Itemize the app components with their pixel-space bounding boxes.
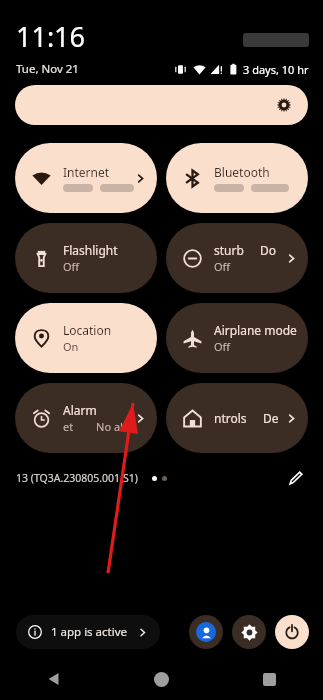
staticText: 11:16 bbox=[16, 18, 86, 55]
button[interactable]: Airplane mode bbox=[166, 303, 308, 373]
button[interactable]: Brightness bbox=[15, 85, 308, 125]
button[interactable]: Edit tiles bbox=[283, 466, 307, 490]
button[interactable]: User account bbox=[189, 615, 223, 649]
staticText: et No ala bbox=[63, 419, 130, 434]
staticText: Tue, Nov 21 bbox=[16, 61, 79, 77]
staticText: ntrols bbox=[214, 410, 247, 426]
staticText: De bbox=[263, 410, 279, 426]
staticText: 3 days, 10 hr bbox=[243, 62, 309, 77]
staticText: Do bbox=[260, 242, 277, 258]
button[interactable]: ntrols bbox=[166, 383, 308, 453]
button[interactable]: Back bbox=[32, 658, 76, 700]
button[interactable]: sturb bbox=[166, 223, 308, 293]
staticText: On bbox=[63, 339, 79, 354]
staticText: Internet bbox=[63, 164, 110, 180]
button[interactable]: Internet bbox=[15, 143, 157, 213]
button[interactable]: Alarm bbox=[15, 383, 157, 453]
staticText: Bluetooth bbox=[214, 164, 270, 180]
button[interactable]: Power bbox=[275, 615, 309, 649]
staticText: 13 (TQ3A.230805.001.S1) bbox=[16, 471, 138, 485]
staticText: Airplane mode bbox=[214, 322, 297, 338]
button[interactable]: Location bbox=[15, 303, 157, 373]
button[interactable]: Home bbox=[139, 658, 183, 700]
staticText: Off bbox=[63, 259, 80, 274]
staticText: Location bbox=[63, 322, 112, 338]
button[interactable]: Flashlight bbox=[15, 223, 157, 293]
staticText: Off bbox=[214, 259, 231, 274]
button[interactable]: Settings bbox=[232, 615, 266, 649]
button[interactable]: Bluetooth bbox=[166, 143, 308, 213]
staticText: Flashlight bbox=[63, 242, 118, 258]
staticText: sturb bbox=[214, 242, 244, 258]
button[interactable]: Recent apps bbox=[247, 658, 291, 700]
button[interactable]: 1 app is active bbox=[28, 615, 148, 649]
staticText: Alarm bbox=[63, 402, 97, 418]
staticText: 1 app is active bbox=[51, 624, 128, 640]
staticText: Off bbox=[214, 339, 231, 354]
